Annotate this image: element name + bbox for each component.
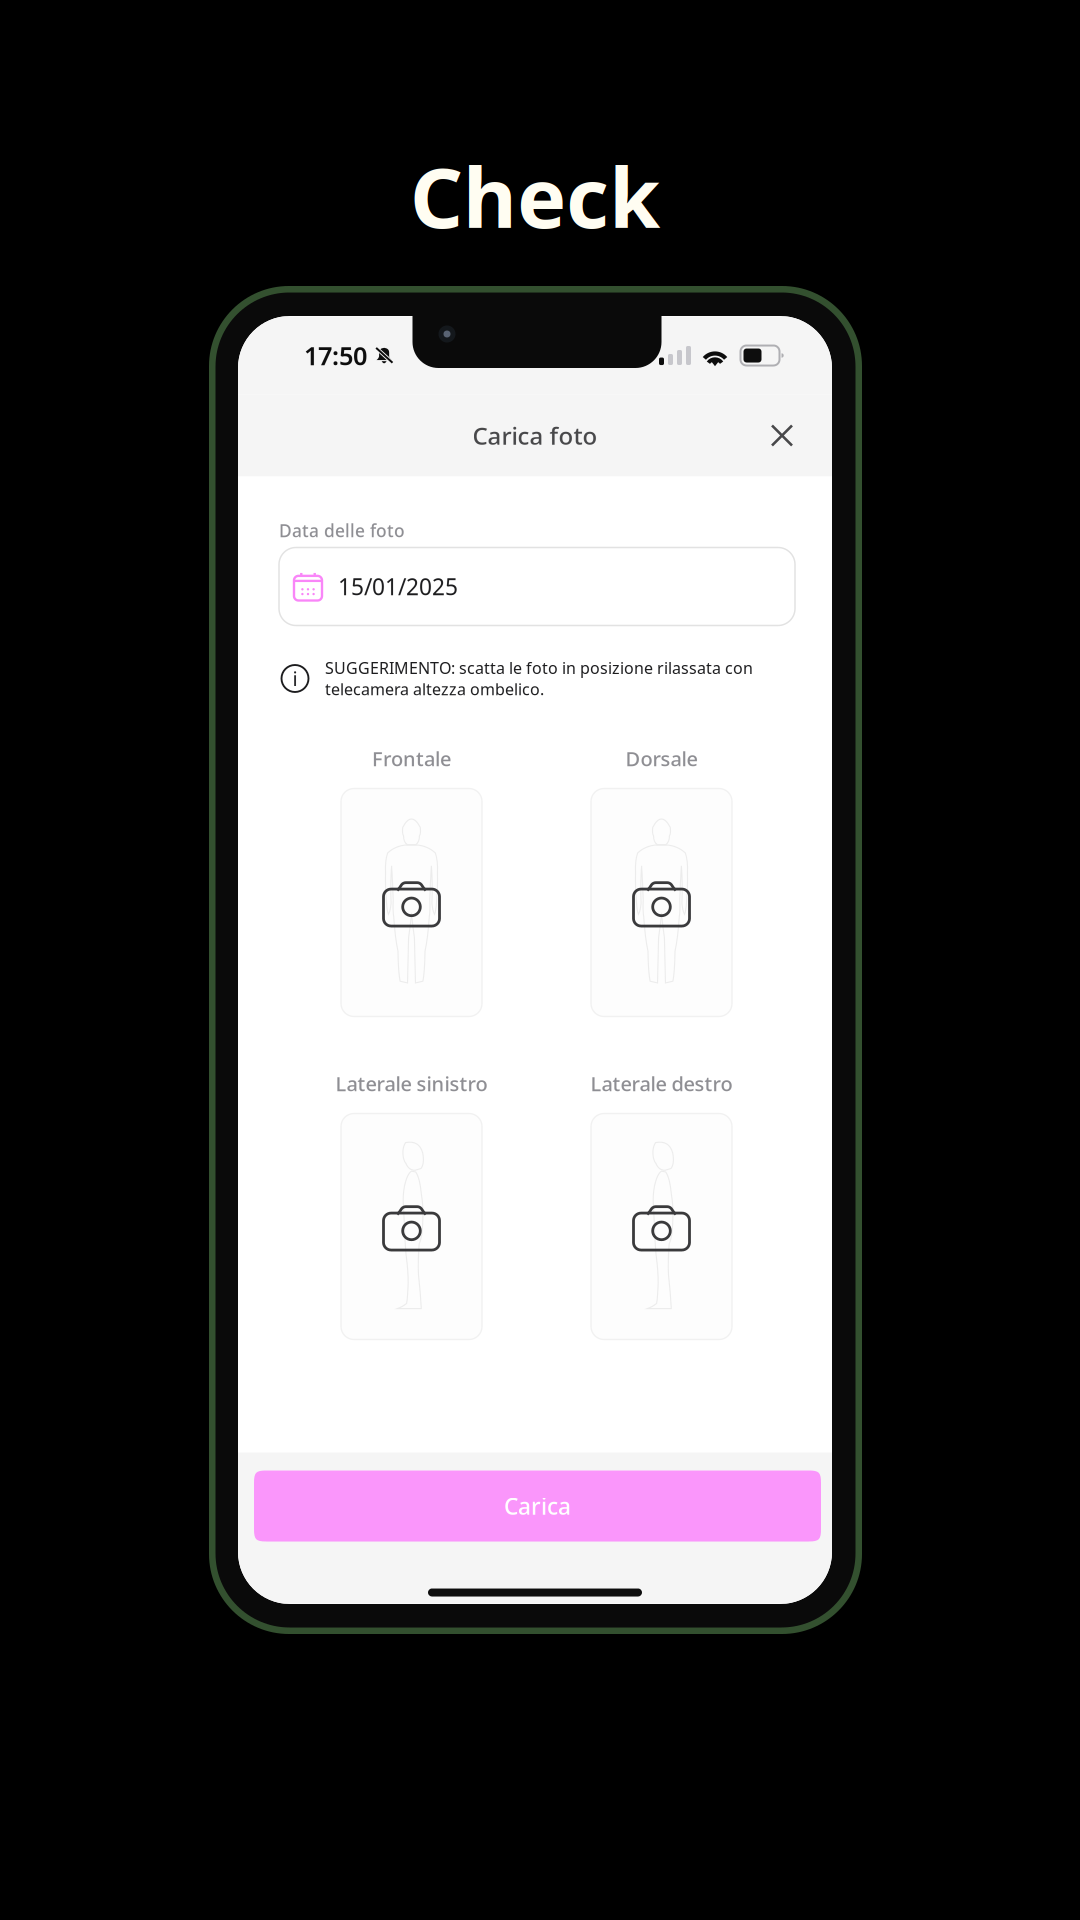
staticText: Laterale sinistro xyxy=(335,1070,487,1097)
staticText: Data delle foto xyxy=(279,519,405,542)
staticText: Frontale xyxy=(372,745,451,772)
button[interactable]: Chiudi xyxy=(756,409,808,461)
button[interactable]: Dorsale xyxy=(591,788,732,1016)
staticText: Laterale destro xyxy=(590,1070,732,1097)
staticText: 17:50 xyxy=(304,339,367,372)
staticText: Check xyxy=(410,141,660,251)
staticText: SUGGERIMENTO: scatta le foto in posizion… xyxy=(325,657,753,700)
staticText: Dorsale xyxy=(625,745,697,772)
staticText: Carica foto xyxy=(472,420,597,451)
staticText: Carica xyxy=(504,1491,571,1521)
button[interactable]: 15/01/2025 xyxy=(279,547,795,625)
button[interactable]: Laterale destro xyxy=(591,1113,732,1339)
staticText: i xyxy=(292,665,297,692)
button[interactable]: Carica xyxy=(254,1470,821,1541)
staticText: 15/01/2025 xyxy=(338,571,458,601)
button[interactable]: Laterale sinistro xyxy=(341,1113,482,1339)
button[interactable]: Frontale xyxy=(341,788,482,1016)
